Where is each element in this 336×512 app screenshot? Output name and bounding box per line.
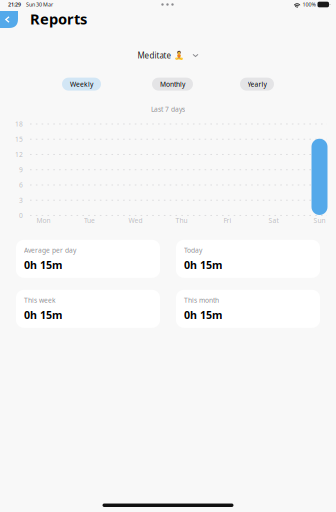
staticText: Thu xyxy=(175,216,187,225)
staticText: Sun xyxy=(313,216,325,225)
staticText: 9 xyxy=(19,165,23,174)
button[interactable]: Monthly xyxy=(152,78,193,91)
button[interactable]: Average per day xyxy=(16,240,160,278)
staticText: Monthly xyxy=(160,80,185,89)
staticText: 15 xyxy=(15,135,23,144)
button[interactable]: This month xyxy=(176,290,320,328)
staticText: Weekly xyxy=(70,80,93,89)
staticText: 0h 15m xyxy=(184,308,222,322)
button[interactable]: Today xyxy=(176,240,320,278)
staticText: Sat xyxy=(268,216,278,225)
button[interactable]: Back xyxy=(0,11,18,28)
staticText: Tue xyxy=(84,216,95,225)
staticText: This week xyxy=(24,296,56,305)
staticText: 3 xyxy=(19,196,23,205)
staticText: 0 xyxy=(19,211,23,220)
staticText: 21:29 xyxy=(8,1,21,8)
staticText: Sun 30 Mar xyxy=(26,1,53,8)
staticText: Mon xyxy=(36,216,50,225)
staticText: Average per day xyxy=(24,246,76,255)
staticText: 0h 15m xyxy=(24,258,62,272)
button[interactable]: This week xyxy=(16,290,160,328)
staticText: Yearly xyxy=(247,80,266,89)
staticText: Meditate xyxy=(137,50,171,61)
staticText: 18 xyxy=(15,120,23,128)
staticText: 0h 15m xyxy=(184,258,222,272)
button[interactable]: Meditate xyxy=(137,50,198,61)
staticText: 6 xyxy=(19,181,23,189)
button[interactable]: Weekly xyxy=(62,78,101,91)
staticText: 100% xyxy=(302,1,315,8)
button[interactable]: Yearly xyxy=(240,78,274,91)
staticText: This month xyxy=(184,296,219,305)
staticText: 🧘 xyxy=(173,51,183,60)
staticText: Wed xyxy=(128,216,142,225)
staticText: 0h 15m xyxy=(24,308,62,322)
staticText: Today xyxy=(184,246,202,255)
staticText: Reports xyxy=(30,9,87,28)
staticText: Fri xyxy=(223,216,231,225)
staticText: Last 7 days xyxy=(151,105,185,113)
staticText: 12 xyxy=(15,150,23,159)
